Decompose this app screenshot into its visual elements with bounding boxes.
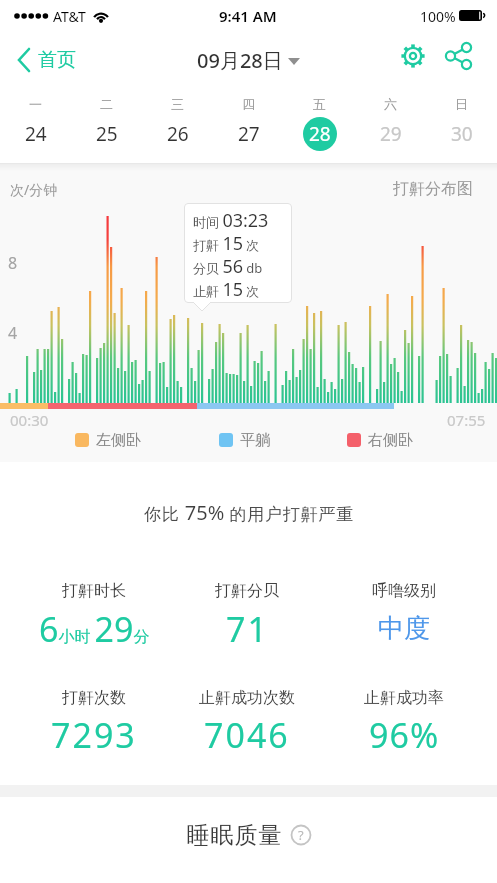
staticText: 呼噜级别 xyxy=(372,581,436,601)
staticText: 打鼾时长 xyxy=(62,581,126,601)
staticText: 四 xyxy=(242,96,255,112)
button[interactable]: 五 xyxy=(284,86,355,164)
staticText: 26 xyxy=(167,121,189,147)
button[interactable] xyxy=(441,39,475,73)
staticText: 71 xyxy=(226,606,269,652)
staticText: 时间 03:23 xyxy=(193,208,269,231)
staticText: 次/分钟 xyxy=(10,180,58,199)
staticText: 止鼾成功率 xyxy=(364,688,444,708)
staticText: AT&T xyxy=(53,7,86,26)
staticText: 6小时 29分 xyxy=(39,606,150,652)
staticText: 打鼾分贝 xyxy=(215,581,279,601)
staticText: 00:30 xyxy=(10,410,49,430)
button[interactable]: 09月28日 xyxy=(197,47,300,74)
staticText: 止鼾 15 次 xyxy=(193,277,260,300)
staticText: 打鼾分布图 xyxy=(393,179,473,199)
staticText: 4 xyxy=(8,322,18,344)
staticText: 一 xyxy=(29,96,42,112)
staticText: 09月28日 xyxy=(197,47,283,74)
staticText: 28 xyxy=(309,121,331,147)
staticText: 二 xyxy=(100,96,113,112)
staticText: 你比 75% 的用户打鼾严重 xyxy=(144,499,355,526)
staticText: 三 xyxy=(171,96,184,112)
staticText: 29 xyxy=(380,121,402,147)
staticText: 五 xyxy=(313,96,326,112)
button[interactable]: 二 xyxy=(71,86,142,164)
button[interactable]: ? xyxy=(290,824,312,846)
staticText: 止鼾成功次数 xyxy=(199,688,295,708)
button[interactable]: 四 xyxy=(213,86,284,164)
staticText: 27 xyxy=(238,121,260,147)
button[interactable]: 首页 xyxy=(16,34,76,86)
staticText: 首页 xyxy=(38,48,76,72)
button[interactable] xyxy=(396,39,430,73)
staticText: 打鼾次数 xyxy=(62,688,126,708)
button[interactable]: 日 xyxy=(426,86,497,164)
staticText: 中度 xyxy=(378,612,430,645)
staticText: 分贝 56 db xyxy=(193,254,263,277)
staticText: 07:55 xyxy=(447,410,486,430)
staticText: 25 xyxy=(96,121,118,147)
staticText: 8 xyxy=(8,252,18,274)
staticText: 100% xyxy=(420,7,456,26)
staticText: 9:41 AM xyxy=(219,6,277,26)
staticText: 30 xyxy=(451,121,473,147)
staticText: 7046 xyxy=(204,712,290,758)
button[interactable]: 三 xyxy=(142,86,213,164)
staticText: 睡眠质量 xyxy=(186,821,282,850)
button[interactable]: 一 xyxy=(0,86,71,164)
staticText: 7293 xyxy=(51,712,137,758)
staticText: 打鼾 15 次 xyxy=(193,231,260,254)
staticText: 平躺 xyxy=(240,431,270,449)
staticText: ? xyxy=(298,826,304,844)
staticText: 日 xyxy=(455,96,468,112)
staticText: 右侧卧 xyxy=(368,431,413,449)
staticText: 六 xyxy=(384,96,397,112)
staticText: 左侧卧 xyxy=(96,431,141,449)
button[interactable]: 六 xyxy=(355,86,426,164)
staticText: 24 xyxy=(25,121,47,147)
staticText: 96% xyxy=(369,712,440,758)
